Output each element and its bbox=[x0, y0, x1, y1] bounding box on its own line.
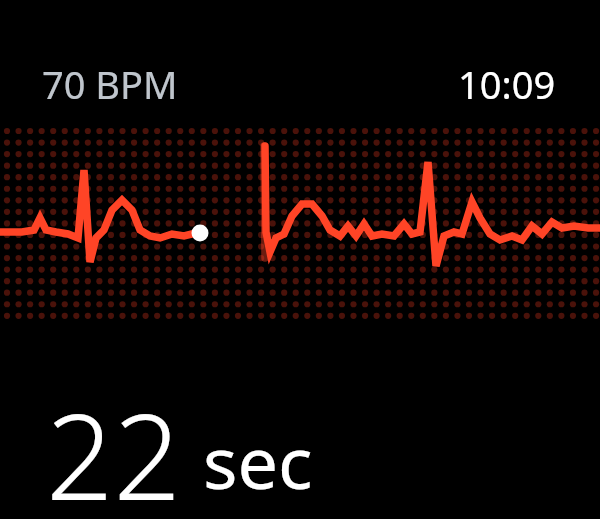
button[interactable]: ECG recording, 70 BPM, 22 seconds bbox=[0, 0, 600, 519]
